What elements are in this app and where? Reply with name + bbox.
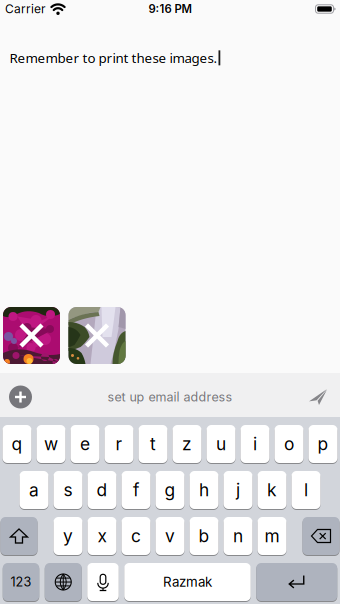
button[interactable]: m bbox=[257, 517, 286, 555]
button[interactable]: Return bbox=[256, 563, 337, 601]
staticText: p bbox=[317, 433, 328, 454]
button[interactable]: g bbox=[155, 471, 184, 509]
button[interactable]: s bbox=[53, 471, 82, 509]
staticText: v bbox=[165, 525, 175, 546]
staticText: c bbox=[131, 525, 141, 546]
button[interactable]: Delete bbox=[302, 517, 339, 555]
staticText: z bbox=[182, 433, 192, 454]
button[interactable]: f bbox=[121, 471, 150, 509]
staticText: y bbox=[63, 525, 73, 546]
button[interactable]: e bbox=[70, 425, 99, 463]
staticText: i bbox=[253, 433, 257, 454]
button[interactable]: b bbox=[189, 517, 218, 555]
button[interactable]: q bbox=[2, 425, 31, 463]
button[interactable]: t bbox=[138, 425, 167, 463]
button[interactable]: y bbox=[53, 517, 82, 555]
button[interactable]: d bbox=[87, 471, 116, 509]
staticText: l bbox=[304, 479, 308, 500]
button[interactable]: u bbox=[206, 425, 235, 463]
staticText: o bbox=[284, 433, 294, 454]
button[interactable]: z bbox=[172, 425, 201, 463]
button[interactable]: n bbox=[223, 517, 252, 555]
staticText: d bbox=[96, 479, 107, 500]
button[interactable]: set up email address bbox=[107, 389, 232, 405]
button[interactable]: Add attachment bbox=[9, 385, 32, 408]
button[interactable]: 123 bbox=[3, 563, 39, 601]
button[interactable]: l bbox=[291, 471, 320, 509]
button[interactable]: o bbox=[274, 425, 303, 463]
button[interactable]: c bbox=[121, 517, 150, 555]
staticText: b bbox=[198, 525, 209, 546]
staticText: h bbox=[199, 479, 209, 500]
button[interactable]: p bbox=[308, 425, 337, 463]
button[interactable]: h bbox=[189, 471, 218, 509]
staticText: u bbox=[216, 433, 226, 454]
button[interactable]: Remove flower image bbox=[3, 307, 60, 364]
button[interactable]: Dictate bbox=[87, 563, 119, 601]
button[interactable]: Remove waterfall image bbox=[68, 307, 125, 364]
staticText: g bbox=[164, 479, 175, 500]
button[interactable]: a bbox=[19, 471, 48, 509]
staticText: 123 bbox=[10, 574, 31, 590]
button[interactable]: Razmak bbox=[124, 563, 251, 601]
staticText: Remember to print these images. bbox=[9, 49, 217, 67]
button[interactable]: Shift bbox=[0, 517, 37, 555]
button[interactable]: Next keyboard bbox=[45, 563, 82, 601]
button[interactable]: Send bbox=[309, 389, 327, 405]
button[interactable]: v bbox=[155, 517, 184, 555]
staticText: n bbox=[233, 525, 243, 546]
staticText: Carrier bbox=[5, 2, 46, 16]
staticText: r bbox=[115, 433, 122, 454]
staticText: x bbox=[97, 525, 106, 546]
staticText: w bbox=[44, 433, 58, 454]
staticText: s bbox=[63, 479, 72, 500]
staticText: a bbox=[29, 479, 39, 500]
staticText: e bbox=[80, 433, 90, 454]
button[interactable]: i bbox=[240, 425, 269, 463]
staticText: 9:16 PM bbox=[148, 2, 191, 16]
button[interactable]: k bbox=[257, 471, 286, 509]
staticText: Razmak bbox=[163, 574, 212, 590]
staticText: f bbox=[133, 479, 139, 500]
staticText: j bbox=[236, 479, 240, 500]
button[interactable]: j bbox=[223, 471, 252, 509]
staticText: q bbox=[11, 433, 22, 454]
button[interactable]: r bbox=[104, 425, 133, 463]
staticText: set up email address bbox=[107, 389, 232, 405]
staticText: k bbox=[267, 479, 277, 500]
button[interactable]: x bbox=[87, 517, 116, 555]
staticText: m bbox=[264, 525, 279, 546]
button[interactable]: w bbox=[36, 425, 65, 463]
staticText: t bbox=[150, 433, 156, 454]
